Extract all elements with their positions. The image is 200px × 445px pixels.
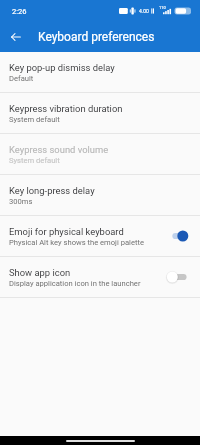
staticText: Show app icon xyxy=(9,267,71,278)
button[interactable]: Keypress sound volume xyxy=(0,134,200,174)
staticText: 4.00 xyxy=(139,8,149,14)
button[interactable]: Emoji for physical keyboard xyxy=(0,216,200,256)
staticText: Physical Alt key shows the emoji palette xyxy=(9,238,144,247)
staticText: System default xyxy=(9,115,60,124)
button[interactable]: Key pop-up dismiss delay xyxy=(0,52,200,92)
staticText: 300ms xyxy=(9,197,33,206)
button[interactable]: Key long-press delay xyxy=(0,175,200,215)
staticText: 2:26 xyxy=(12,7,27,16)
button[interactable]: Show app icon xyxy=(0,257,200,297)
staticText: Emoji for physical keyboard xyxy=(9,226,124,237)
staticText: Key pop-up dismiss delay xyxy=(9,62,115,73)
button[interactable]: Navigate up xyxy=(3,24,29,50)
staticText: System default xyxy=(9,156,60,165)
button[interactable]: Keypress vibration duration xyxy=(0,93,200,133)
staticText: Keyboard preferences xyxy=(38,30,155,44)
staticText: Display application icon in the launcher xyxy=(9,279,141,288)
staticText: 110 xyxy=(159,5,166,10)
staticText: Keypress sound volume xyxy=(9,144,109,155)
staticText: Keypress vibration duration xyxy=(9,103,123,114)
staticText: Default xyxy=(9,74,34,83)
staticText: Key long-press delay xyxy=(9,185,95,196)
